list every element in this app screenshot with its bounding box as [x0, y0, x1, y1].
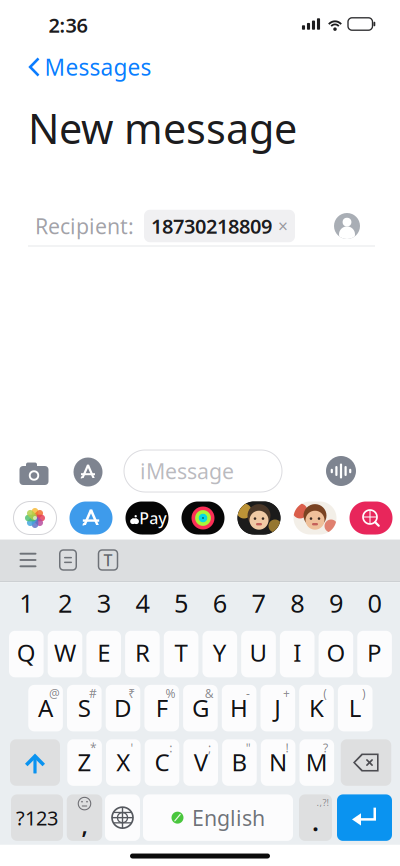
button[interactable]: 2 — [48, 586, 82, 620]
staticText: New message — [28, 101, 297, 155]
staticText: # — [89, 685, 97, 701]
staticText: ; — [208, 740, 211, 756]
button[interactable]: 7 — [241, 586, 276, 620]
staticText: L — [349, 692, 362, 724]
staticText: B — [231, 746, 247, 778]
button[interactable]: Menu — [15, 548, 41, 572]
button[interactable]: Period — [299, 794, 332, 841]
button[interactable]: ; — [183, 739, 218, 786]
button[interactable]: Clipboard — [56, 548, 80, 572]
button[interactable]: E — [86, 631, 121, 677]
staticText: % — [165, 685, 175, 701]
button[interactable]: R — [125, 631, 160, 677]
staticText: ?123 — [16, 804, 58, 831]
button[interactable]: Apps — [73, 457, 102, 486]
staticText: Recipient: — [35, 212, 134, 240]
button[interactable]: - — [222, 685, 256, 731]
button[interactable]: App Store — [69, 501, 112, 534]
button[interactable]: 1 — [9, 586, 44, 620]
button[interactable]: T — [164, 631, 198, 677]
button[interactable]: # — [67, 685, 102, 731]
staticText: 8 — [290, 586, 304, 620]
button[interactable]: Camera — [19, 460, 48, 483]
button[interactable]: Shift — [10, 739, 60, 786]
staticText: ' — [131, 740, 134, 756]
staticText: X — [116, 746, 130, 778]
staticText: F — [156, 692, 168, 724]
staticText: - — [246, 685, 250, 701]
button[interactable]: Memoji — [237, 501, 280, 534]
button[interactable]: U — [241, 631, 276, 677]
staticText: T — [175, 637, 188, 668]
staticText: 3 — [97, 586, 111, 620]
staticText: P — [367, 637, 382, 668]
button[interactable]: & — [183, 685, 218, 731]
staticText: 7 — [251, 586, 265, 620]
button[interactable]: : — [145, 739, 179, 786]
button[interactable]: ( — [299, 685, 334, 731]
staticText: " — [246, 740, 251, 756]
button[interactable]: Switch keyboard — [105, 794, 140, 841]
staticText: 0 — [368, 586, 382, 620]
button[interactable]: % — [144, 685, 179, 731]
button[interactable]: Add contact — [334, 213, 360, 239]
button[interactable]: Delete — [341, 739, 391, 786]
button[interactable]: 9 — [319, 586, 353, 620]
staticText: 2 — [58, 586, 72, 620]
staticText: A — [38, 692, 53, 724]
button[interactable]: " — [222, 739, 257, 786]
staticText: H — [230, 692, 248, 724]
button[interactable]: Q — [9, 631, 44, 677]
staticText: W — [54, 637, 76, 668]
button[interactable]: 0 — [357, 586, 392, 620]
button[interactable]: Images — [349, 501, 392, 534]
button[interactable]: I — [280, 631, 314, 677]
button[interactable]: Photos — [13, 501, 56, 534]
button[interactable]: 4 — [125, 586, 160, 620]
button[interactable]: Apple Pay — [125, 501, 168, 534]
button[interactable]: ) — [338, 685, 372, 731]
button[interactable]: 5 — [164, 586, 198, 620]
button[interactable]: English — [143, 794, 293, 841]
staticText: 18730218809 — [151, 213, 272, 239]
button[interactable]: ! — [261, 739, 295, 786]
button[interactable]: + — [260, 685, 295, 731]
button[interactable]: ₹ — [106, 685, 140, 731]
button[interactable]: Stickers — [293, 501, 336, 534]
button[interactable]: Return — [337, 794, 392, 841]
button[interactable]: 8 — [280, 586, 314, 620]
button[interactable]: P — [357, 631, 392, 677]
staticText: I — [293, 637, 301, 668]
staticText: ₹ — [128, 685, 135, 701]
button[interactable]: Record audio — [326, 456, 356, 486]
button[interactable]: * — [67, 739, 102, 786]
staticText: O — [326, 637, 345, 668]
staticText: N — [269, 746, 287, 778]
staticText: Pay — [139, 507, 166, 529]
staticText: * — [90, 740, 97, 756]
button[interactable]: Text format — [96, 548, 120, 572]
button[interactable]: ? — [299, 739, 334, 786]
button[interactable]: O — [319, 631, 353, 677]
button[interactable]: iMessage — [124, 450, 282, 492]
button[interactable]: @ — [28, 685, 63, 731]
staticText: : — [169, 740, 172, 756]
staticText: S — [78, 692, 91, 724]
staticText: E — [97, 637, 110, 668]
staticText: + — [283, 685, 290, 701]
button[interactable]: W — [48, 631, 82, 677]
staticText: ! — [285, 740, 288, 756]
button[interactable]: 18730218809 — [144, 210, 295, 242]
button[interactable]: Fitness — [181, 501, 224, 534]
button[interactable]: ?123 — [11, 794, 63, 841]
button[interactable]: 6 — [202, 586, 237, 620]
staticText: 6 — [213, 586, 227, 620]
button[interactable]: Messages — [28, 52, 188, 82]
button[interactable]: ' — [106, 739, 141, 786]
staticText: J — [274, 692, 281, 724]
button[interactable]: Emoji and comma — [67, 794, 102, 841]
button[interactable]: Y — [202, 631, 237, 677]
button[interactable]: 3 — [86, 586, 121, 620]
staticText: U — [249, 637, 267, 668]
staticText: V — [194, 746, 208, 778]
